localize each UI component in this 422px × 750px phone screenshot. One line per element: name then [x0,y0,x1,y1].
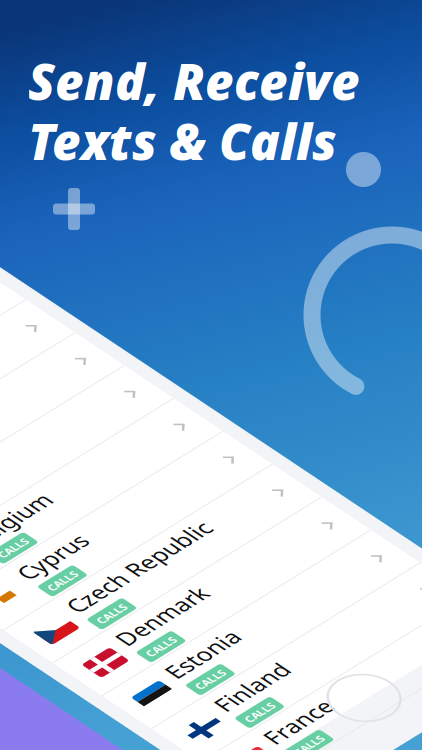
button[interactable] [14,210,330,267]
staticText: CALLS [79,647,111,661]
staticText: Send, Receive [28,48,360,113]
button[interactable]: Finland [14,609,330,666]
button[interactable]: France [14,666,330,723]
button[interactable]: Cyprus [14,381,330,438]
staticText: Czech Republic [74,441,235,471]
staticText: Cyprus [74,384,148,414]
staticText: CALLS [79,362,111,376]
button[interactable]: Denmark [14,495,330,552]
staticText: Belgium [74,327,163,357]
staticText: Texts & Calls [28,108,337,173]
button[interactable]: Czech Republic [14,438,330,495]
staticText: CALLS [79,590,111,604]
button[interactable] [14,153,330,210]
staticText: CALLS [79,704,111,718]
button[interactable] [14,267,330,324]
staticText: Finland [74,612,153,642]
button[interactable] [14,96,330,153]
button[interactable]: Belgium [14,324,330,381]
staticText: CALLS [79,533,111,547]
button[interactable]: Estonia [14,552,330,609]
staticText: Estonia [74,555,153,585]
staticText: France [74,669,146,699]
